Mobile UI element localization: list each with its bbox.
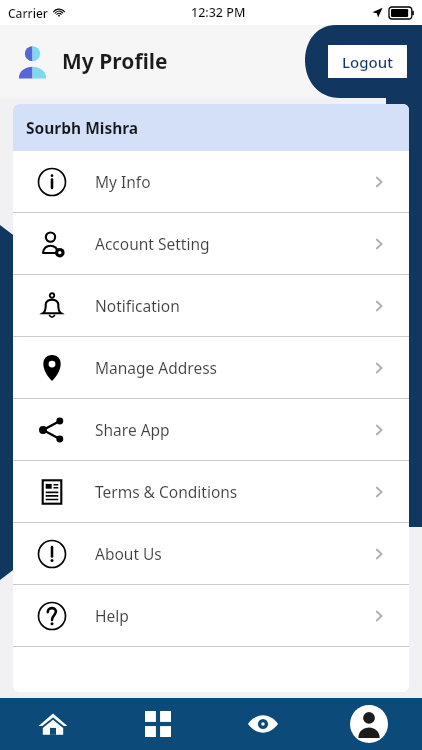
button[interactable]: Categories [105, 698, 210, 750]
button[interactable]: About Us [13, 523, 409, 584]
staticText: Help [95, 605, 129, 626]
button[interactable]: Logout [328, 45, 407, 78]
button[interactable]: My Info [13, 151, 409, 212]
button[interactable]: Watchlist [210, 698, 316, 750]
button[interactable]: Manage Address [13, 337, 409, 398]
button[interactable]: Notification [13, 275, 409, 336]
staticText: My Info [95, 171, 151, 192]
button[interactable]: Terms & Conditions [13, 461, 409, 522]
staticText: 12:32 PM [191, 4, 246, 21]
button[interactable]: Profile [316, 698, 422, 750]
staticText: About Us [95, 543, 162, 564]
staticText: Sourbh Mishra [26, 117, 139, 138]
button[interactable]: Share App [13, 399, 409, 460]
staticText: Manage Address [95, 357, 217, 378]
staticText: My Profile [62, 47, 168, 76]
button[interactable]: Account Setting [13, 213, 409, 274]
staticText: Terms & Conditions [95, 481, 238, 502]
staticText: Logout [342, 52, 393, 72]
staticText: Notification [95, 295, 180, 316]
staticText: Share App [95, 419, 170, 440]
staticText: Carrier [8, 5, 48, 21]
button[interactable]: Help [13, 585, 409, 646]
button[interactable]: Home [0, 698, 105, 750]
staticText: Account Setting [95, 233, 210, 254]
